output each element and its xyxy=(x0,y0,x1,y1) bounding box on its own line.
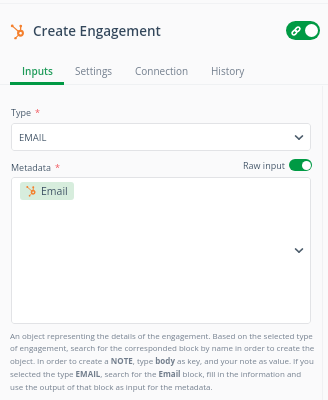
button[interactable]: Inputs xyxy=(11,57,64,85)
staticText: Create Engagement xyxy=(33,22,161,40)
staticText: Inputs xyxy=(22,64,53,78)
staticText: Metadata xyxy=(11,161,52,173)
staticText: Settings xyxy=(75,64,113,78)
staticText: An object representing the details of th… xyxy=(10,330,316,393)
button[interactable]: Connection xyxy=(124,57,200,85)
button[interactable]: History xyxy=(200,57,256,85)
other: Raw input enabled xyxy=(289,159,312,171)
button[interactable]: EMAIL xyxy=(11,123,311,151)
staticText: EMAIL xyxy=(19,131,47,144)
staticText: Email xyxy=(41,184,68,198)
button[interactable]: Raw input xyxy=(243,159,312,171)
button[interactable]: Settings xyxy=(64,57,124,85)
button[interactable]: Email xyxy=(20,182,74,200)
staticText: * xyxy=(35,106,40,118)
staticText: * xyxy=(55,161,60,173)
staticText: Connection xyxy=(135,64,189,78)
staticText: History xyxy=(211,64,245,78)
staticText: Raw input xyxy=(243,159,285,171)
staticText: Type xyxy=(11,106,32,118)
button[interactable]: Connection enabled xyxy=(286,21,320,40)
